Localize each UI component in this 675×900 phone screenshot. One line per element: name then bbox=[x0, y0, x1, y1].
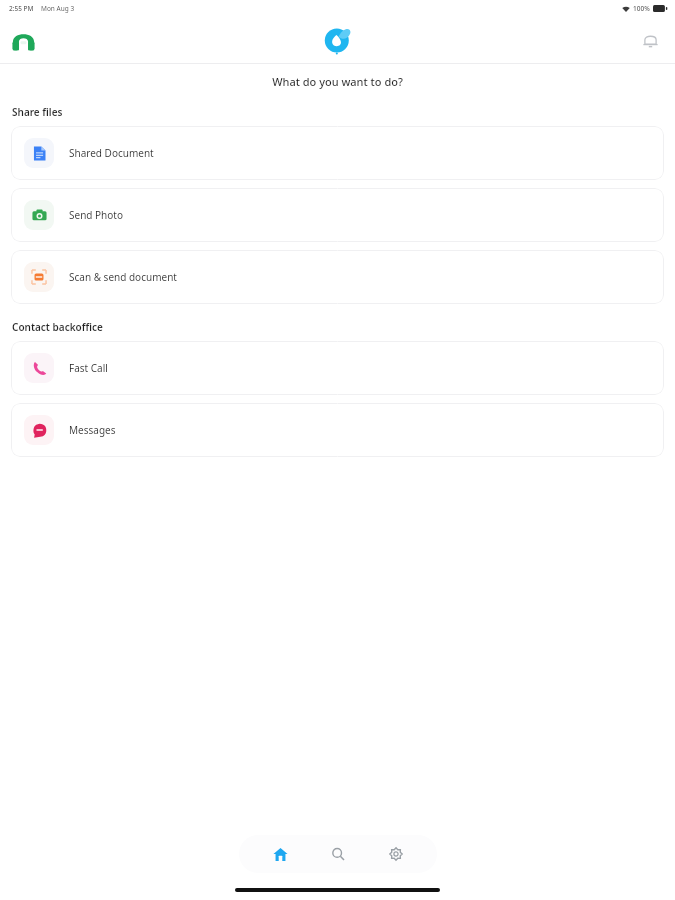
staticText: 2:55 PM bbox=[9, 4, 34, 13]
staticText: What do you want to do? bbox=[0, 74, 675, 89]
staticText: Contact backoffice bbox=[12, 320, 103, 334]
staticText: Scan & send document bbox=[69, 270, 177, 284]
button[interactable]: Settings bbox=[379, 837, 413, 871]
button[interactable]: Send Photo bbox=[11, 188, 664, 242]
staticText: Fast Call bbox=[69, 361, 108, 375]
button[interactable]: Scan & send document bbox=[11, 250, 664, 304]
staticText: 100% bbox=[633, 4, 650, 13]
button[interactable]: Fast Call bbox=[11, 341, 664, 395]
button[interactable]: Home bbox=[263, 837, 297, 871]
button[interactable]: Notifications bbox=[633, 23, 667, 57]
button[interactable]: Home logo bbox=[318, 20, 358, 60]
staticText: Send Photo bbox=[69, 208, 123, 222]
button[interactable]: Messages bbox=[11, 403, 664, 457]
button[interactable]: Shared Document bbox=[11, 126, 664, 180]
staticText: Share files bbox=[12, 105, 63, 119]
staticText: Mon Aug 3 bbox=[41, 4, 75, 13]
button[interactable]: Search bbox=[321, 837, 355, 871]
staticText: Shared Document bbox=[69, 146, 154, 160]
button[interactable]: Account bbox=[6, 23, 40, 57]
staticText: Messages bbox=[69, 423, 116, 437]
